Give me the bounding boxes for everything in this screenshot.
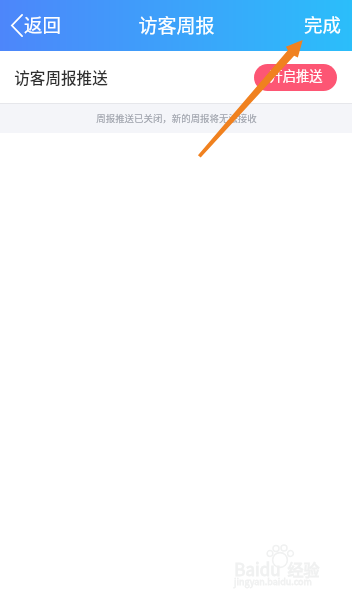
button[interactable]: 完成 <box>290 0 352 51</box>
staticText: 访客周报 <box>138 11 215 39</box>
button[interactable]: 返回 <box>0 0 71 51</box>
staticText: Baidu <box>234 556 281 581</box>
staticText: 周报推送已关闭，新的周报将无法接收 <box>96 111 257 125</box>
staticText: 返回 <box>24 11 61 38</box>
button[interactable]: 开启推送 <box>254 64 337 91</box>
staticText: 开启推送 <box>269 66 323 85</box>
staticText: 完成 <box>304 11 341 38</box>
staticText: jingyan.baidu.com <box>234 575 312 588</box>
staticText: 访客周报推送 <box>14 66 108 89</box>
staticText: 经验 <box>287 557 320 580</box>
